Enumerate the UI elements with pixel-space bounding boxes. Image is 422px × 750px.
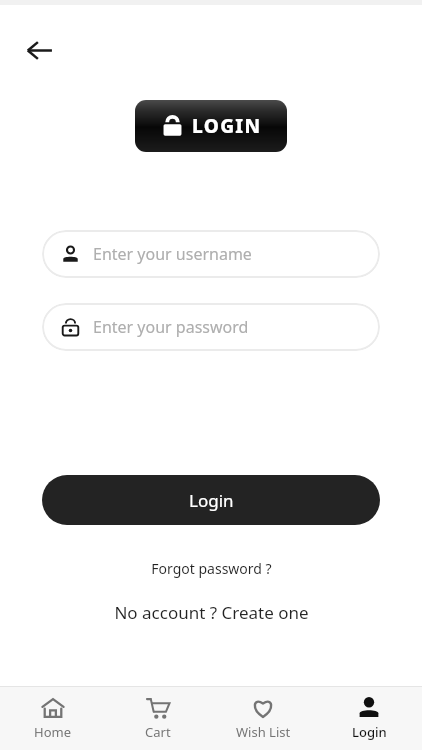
button[interactable]: Wish List: [210, 696, 316, 741]
staticText: No account ? Create one: [114, 601, 309, 624]
button[interactable]: Username: [42, 230, 380, 278]
button[interactable]: LOGIN: [135, 100, 287, 152]
staticText: Login: [189, 489, 234, 512]
staticText: Enter your password: [93, 316, 249, 338]
staticText: Home: [34, 723, 71, 741]
button[interactable]: Password: [42, 303, 380, 351]
button[interactable]: Back: [16, 27, 62, 73]
button[interactable]: Login: [42, 475, 380, 525]
staticText: Forgot password ?: [151, 559, 272, 578]
staticText: LOGIN: [192, 113, 262, 139]
button[interactable]: Cart: [105, 696, 210, 741]
button[interactable]: Login: [316, 696, 422, 741]
staticText: Wish List: [236, 723, 291, 741]
button[interactable]: Home: [0, 696, 105, 741]
staticText: Enter your username: [93, 243, 252, 265]
staticText: Cart: [145, 723, 171, 741]
button[interactable]: Forgot password ?: [139, 556, 284, 581]
staticText: Login: [352, 723, 387, 741]
button[interactable]: No account ? Create one: [102, 598, 321, 627]
